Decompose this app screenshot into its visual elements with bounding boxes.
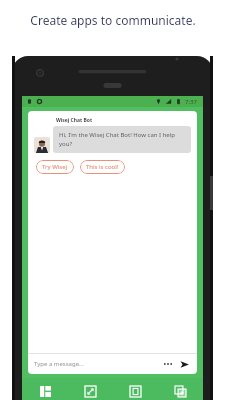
button[interactable]: Try Wisej [36, 160, 74, 174]
button[interactable]: More options [162, 358, 174, 370]
staticText: Try Wisej [42, 163, 68, 171]
button[interactable]: Resize [68, 378, 113, 400]
button[interactable]: Type a message... [28, 354, 197, 374]
staticText: Hi, I'm the Wisej Chat Bot! How can I he… [59, 131, 185, 148]
staticText: Type a message... [34, 360, 84, 368]
button[interactable]: This is cool! [80, 160, 125, 174]
button[interactable]: Dashboard [22, 378, 68, 400]
staticText: Create apps to communicate. [30, 12, 196, 28]
button[interactable]: Frame [113, 378, 158, 400]
button[interactable]: Send [177, 357, 191, 371]
staticText: This is cool! [86, 163, 119, 171]
staticText: Wisej Chat Bot [56, 117, 93, 124]
button[interactable]: Add window [158, 378, 203, 400]
staticText: 7:37 [185, 98, 197, 106]
